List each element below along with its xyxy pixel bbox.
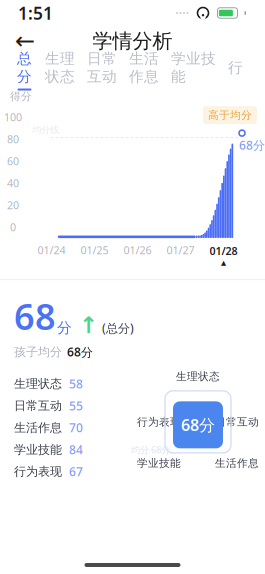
staticText: 日常互动 (87, 49, 117, 85)
staticText: 学业技能 (137, 457, 181, 470)
staticText: 生活作息 (14, 420, 62, 435)
staticText: 0 (10, 220, 16, 234)
staticText: 68分 (239, 137, 265, 153)
button[interactable]: 生理状态 (39, 56, 81, 84)
staticText: 55 (69, 398, 83, 414)
staticText: 学业技能 (171, 49, 216, 85)
staticText: 均分 68分 (131, 443, 170, 456)
staticText: 行为表现 (137, 415, 181, 428)
staticText: 70 (69, 420, 83, 436)
staticText: 58 (69, 376, 83, 392)
staticText: 得分 (10, 90, 32, 103)
staticText: 生理状态 (176, 370, 220, 383)
staticText: ← (15, 27, 35, 55)
staticText: 生活作息 (129, 49, 159, 85)
staticText: 20 (7, 198, 19, 212)
staticText: 84 (69, 442, 83, 458)
staticText: ▲ (221, 259, 226, 266)
staticText: ↑ (79, 312, 98, 338)
staticText: 80 (7, 132, 19, 146)
staticText: 孩子均分 (14, 344, 62, 359)
button[interactable]: 总分 (10, 56, 39, 84)
staticText: 学情分析 (92, 29, 172, 53)
button[interactable]: 日常互动 (81, 56, 123, 84)
staticText: 行 (228, 58, 243, 76)
staticText: 01/25 (80, 243, 108, 257)
staticText: 01/26 (123, 243, 151, 257)
staticText: 行为表现 (14, 464, 62, 479)
button[interactable]: 学业技能 (165, 56, 222, 84)
staticText: 1:51 (18, 1, 53, 24)
staticText: 高于均分 (208, 109, 252, 122)
staticText: 68 (14, 292, 56, 340)
staticText: 68分 (67, 344, 93, 360)
staticText: 01/28 (209, 244, 237, 258)
staticText: 日常互动 (14, 398, 62, 413)
staticText: 分 (57, 319, 72, 337)
staticText: 均分线 (32, 124, 59, 136)
staticText: 总分 (17, 49, 32, 85)
staticText: 生理状态 (14, 376, 62, 391)
button[interactable]: 行 (222, 56, 249, 84)
staticText: 生理状态 (45, 49, 75, 85)
button[interactable]: 高于均分 (203, 106, 257, 124)
staticText: 68分 (181, 414, 215, 435)
staticText: 生活作息 (215, 457, 259, 470)
staticText: 日常互动 (215, 415, 259, 428)
button[interactable]: 生活作息 (123, 56, 165, 84)
staticText: 100 (4, 110, 22, 124)
staticText: 学业技能 (14, 442, 62, 457)
staticText: 40 (7, 176, 19, 190)
staticText: 60 (7, 154, 19, 168)
button[interactable]: Back (8, 26, 42, 56)
staticText: 01/27 (166, 243, 194, 257)
staticText: (总分) (102, 320, 134, 336)
staticText: 67 (69, 464, 83, 479)
staticText: 01/24 (37, 243, 65, 257)
